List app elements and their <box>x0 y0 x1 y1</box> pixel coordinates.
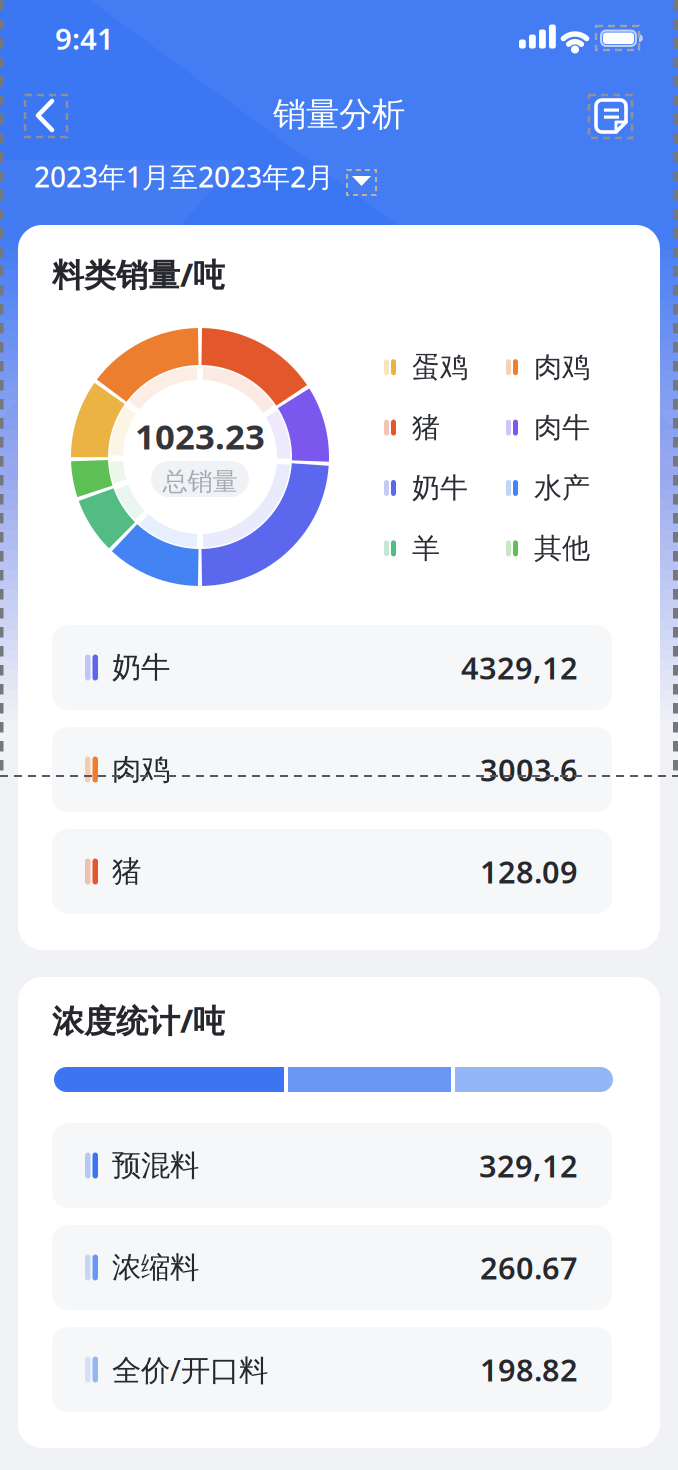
button[interactable]: 2023年1月至2023年2月 <box>0 158 678 202</box>
staticText: 全价/开口料 <box>112 1350 268 1389</box>
staticText: 128.09 <box>480 851 578 892</box>
staticText: 260.67 <box>480 1247 578 1288</box>
staticText: 预混料 <box>112 1147 199 1183</box>
staticText: 2023年1月至2023年2月 <box>34 158 334 195</box>
button[interactable]: Notes <box>596 100 628 134</box>
staticText: 料类销量/吨 <box>52 253 225 295</box>
staticText: 1023.23 <box>135 413 265 459</box>
staticText: 奶牛 <box>412 471 468 505</box>
staticText: 浓度统计/吨 <box>52 999 225 1041</box>
staticText: 浓缩料 <box>112 1249 199 1285</box>
staticText: 4329,12 <box>461 647 578 688</box>
staticText: 奶牛 <box>112 649 170 685</box>
staticText: 198.82 <box>480 1349 578 1390</box>
button[interactable]: Back <box>36 99 54 132</box>
staticText: 肉鸡 <box>112 751 170 787</box>
staticText: 其他 <box>534 531 590 566</box>
staticText: 肉鸡 <box>534 350 590 384</box>
staticText: 猪 <box>412 410 440 445</box>
staticText: 羊 <box>412 531 440 566</box>
staticText: 猪 <box>112 853 141 889</box>
staticText: 肉牛 <box>534 410 590 445</box>
staticText: 9:41 <box>55 19 114 58</box>
staticText: 蛋鸡 <box>412 350 468 384</box>
staticText: 销量分析 <box>273 94 405 135</box>
staticText: 3003.6 <box>480 749 578 790</box>
staticText: 329,12 <box>479 1145 578 1186</box>
staticText: 水产 <box>534 471 590 505</box>
staticText: 总销量 <box>162 466 237 497</box>
